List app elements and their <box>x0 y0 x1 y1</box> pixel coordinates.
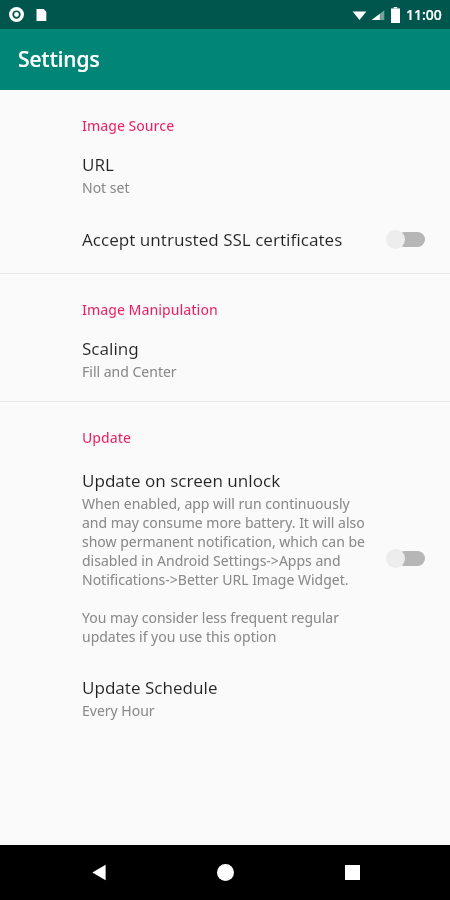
staticText: 11:00 <box>406 5 442 24</box>
staticText: Image Source <box>82 116 434 135</box>
staticText: Settings <box>18 45 100 74</box>
staticText: Every Hour <box>82 701 155 720</box>
staticText: Image Manipulation <box>82 300 434 319</box>
button[interactable]: Home <box>197 845 253 900</box>
staticText: Fill and Center <box>82 362 177 381</box>
staticText: Not set <box>82 178 130 197</box>
button[interactable]: Toggle <box>386 546 426 570</box>
button[interactable]: Toggle <box>386 227 426 251</box>
staticText: Scaling <box>82 337 139 360</box>
staticText: Accept untrusted SSL certificates <box>82 228 378 251</box>
button[interactable]: Scaling <box>0 319 450 401</box>
button[interactable]: Update on screen unlock <box>0 447 450 646</box>
button[interactable]: URL <box>0 135 450 197</box>
staticText: Update Schedule <box>82 676 218 699</box>
button[interactable]: Recent apps <box>324 845 380 900</box>
button[interactable]: Accept untrusted SSL certificates <box>0 197 450 273</box>
staticText: Update on screen unlock <box>82 469 281 492</box>
button[interactable]: Update Schedule <box>0 646 450 720</box>
staticText: When enabled, app will run continuously … <box>82 494 376 646</box>
button[interactable]: Back <box>71 845 127 900</box>
staticText: Update <box>82 428 434 447</box>
staticText: URL <box>82 153 114 176</box>
